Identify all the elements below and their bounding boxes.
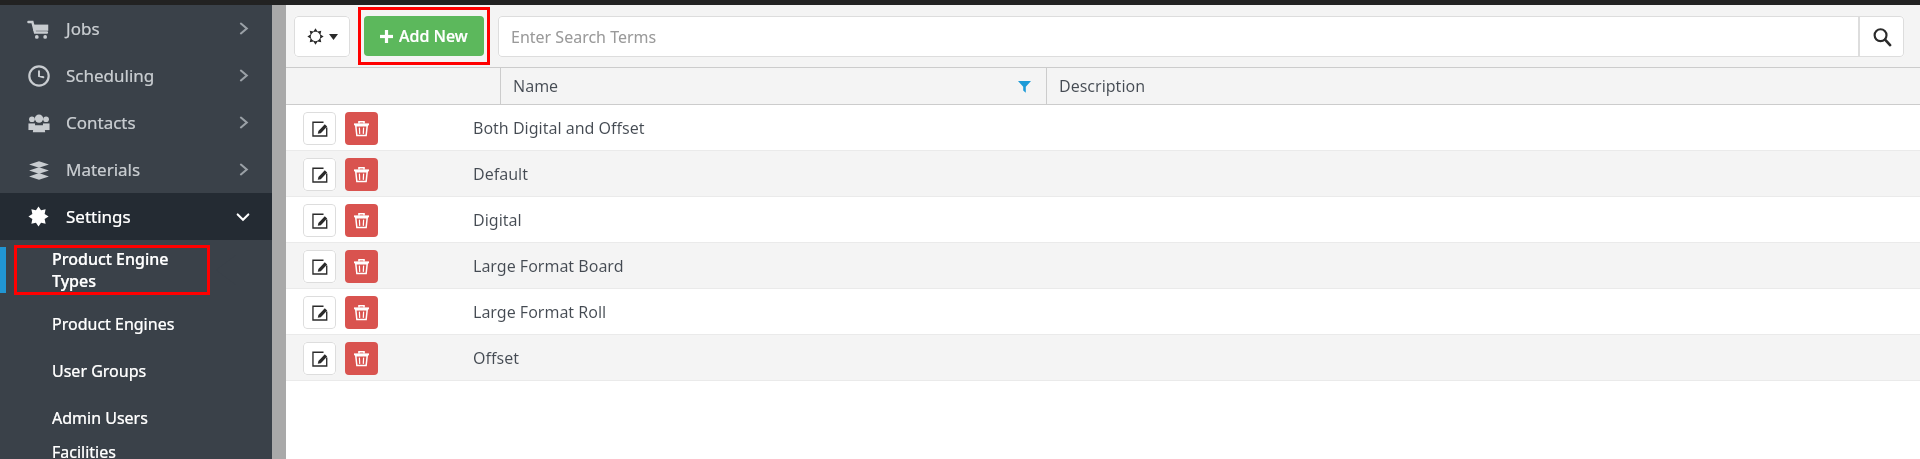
button[interactable]: Admin Users — [0, 394, 272, 441]
button[interactable]: Product Engine Types — [14, 245, 210, 295]
button[interactable]: Settings options — [294, 16, 350, 57]
button[interactable]: Edit Large Format Board — [286, 243, 1920, 289]
staticText: Settings — [66, 205, 131, 228]
staticText: Name — [513, 75, 559, 97]
button[interactable]: Delete Large Format Board — [345, 250, 378, 283]
button[interactable]: User Groups — [0, 347, 272, 394]
staticText: User Groups — [52, 360, 147, 382]
button[interactable]: Jobs — [0, 5, 272, 52]
staticText: Product Engine Types — [52, 248, 210, 292]
staticText: Digital — [473, 209, 522, 231]
button[interactable]: Delete Offset — [345, 342, 378, 375]
button[interactable]: Edit Default — [303, 158, 336, 191]
button[interactable]: Edit Large Format Roll — [286, 289, 1920, 335]
button[interactable]: Edit Both Digital and Offset — [303, 112, 336, 145]
staticText: Jobs — [66, 17, 100, 40]
staticText: Scheduling — [66, 64, 155, 87]
staticText: Product Engines — [52, 313, 175, 335]
button[interactable]: Delete Default — [345, 158, 378, 191]
button[interactable]: Edit Large Format Board — [303, 250, 336, 283]
button[interactable]: Delete Both Digital and Offset — [345, 112, 378, 145]
button[interactable]: Product Engines — [0, 300, 272, 347]
button[interactable]: Delete Large Format Roll — [345, 296, 378, 329]
button[interactable]: Edit Large Format Roll — [303, 296, 336, 329]
button[interactable]: Materials — [0, 146, 272, 193]
button[interactable]: Edit Offset — [286, 335, 1920, 381]
button[interactable]: Settings — [0, 193, 272, 240]
button[interactable]: Edit Default — [286, 151, 1920, 197]
button[interactable]: Edit Both Digital and Offset — [286, 105, 1920, 151]
button[interactable]: Enter Search Terms — [498, 16, 1859, 57]
button[interactable]: Scheduling — [0, 52, 272, 99]
button[interactable]: Edit Digital — [303, 204, 336, 237]
button[interactable]: Description — [1047, 67, 1920, 105]
staticText: Materials — [66, 158, 141, 181]
staticText: Offset — [473, 347, 519, 369]
button[interactable]: Name — [501, 67, 1047, 105]
staticText: Enter Search Terms — [511, 26, 657, 48]
button[interactable]: Edit Digital — [286, 197, 1920, 243]
staticText: Large Format Board — [473, 255, 624, 277]
button[interactable]: Contacts — [0, 99, 272, 146]
staticText: Add New — [399, 25, 468, 47]
staticText: Default — [473, 163, 528, 185]
staticText: Facilities — [52, 441, 116, 459]
button[interactable]: Delete Digital — [345, 204, 378, 237]
button[interactable]: Search — [1859, 16, 1904, 57]
staticText: Both Digital and Offset — [473, 117, 645, 139]
button[interactable]: Add New — [364, 16, 484, 56]
staticText: Contacts — [66, 111, 136, 134]
staticText: Large Format Roll — [473, 301, 607, 323]
button[interactable]: Facilities — [0, 441, 272, 459]
staticText: Description — [1059, 75, 1146, 97]
button[interactable]: Edit Offset — [303, 342, 336, 375]
staticText: Admin Users — [52, 407, 148, 429]
